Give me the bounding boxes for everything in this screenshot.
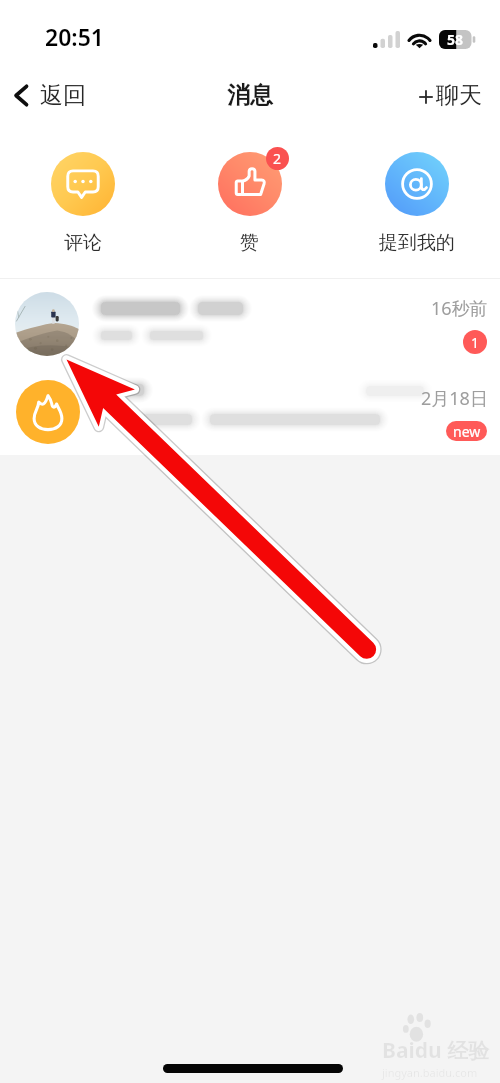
other: Back	[11, 85, 32, 106]
staticText: 消息	[227, 81, 273, 110]
button[interactable]: 16秒前	[0, 279, 500, 369]
staticText: 20:51	[45, 21, 104, 52]
button[interactable]: 评论	[0, 139, 166, 255]
button[interactable]: Back	[5, 75, 92, 116]
button[interactable]: 提到我的	[333, 139, 500, 255]
staticText: new	[453, 422, 481, 441]
button[interactable]: 2	[166, 139, 333, 255]
staticText: Baidu 经验	[382, 1036, 490, 1065]
staticText: 赞	[240, 231, 259, 255]
staticText: 1	[471, 333, 480, 352]
staticText: jingyan.baidu.com	[382, 1065, 478, 1080]
staticText: 返回	[40, 81, 86, 110]
button[interactable]: 聊天	[412, 75, 488, 116]
staticText: 评论	[64, 231, 102, 255]
staticText: 聊天	[436, 81, 482, 110]
staticText: 58	[447, 30, 464, 49]
staticText: 提到我的	[379, 231, 455, 255]
button[interactable]: 2月18日	[0, 369, 500, 455]
staticText: 16秒前	[431, 296, 488, 321]
staticText: 2月18日	[421, 386, 488, 411]
staticText: 2	[273, 149, 282, 168]
